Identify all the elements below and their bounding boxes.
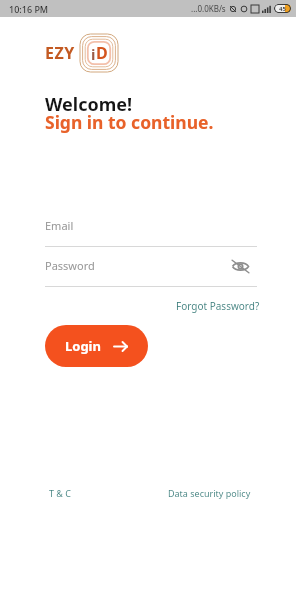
staticText: Sign in to continue. [45, 110, 214, 134]
staticText: EZY [45, 42, 75, 64]
button[interactable]: Password [45, 249, 223, 286]
staticText: T & C [49, 487, 71, 499]
staticText: 10:16 PM [9, 3, 49, 15]
staticText: 45 [279, 5, 286, 13]
staticText: Forgot Password? [176, 299, 260, 313]
staticText: Email [45, 218, 74, 233]
button[interactable]: Login [45, 325, 148, 367]
button[interactable]: Forgot Password? [174, 297, 262, 315]
button[interactable]: Email [45, 209, 257, 246]
staticText: Welcome! [45, 92, 133, 117]
button[interactable]: Data security policy [167, 486, 252, 500]
staticText: Password [45, 258, 95, 273]
button[interactable]: T & C [48, 486, 72, 500]
button[interactable]: Show password [230, 256, 251, 277]
staticText: Login [65, 337, 101, 355]
staticText: Data security policy [168, 487, 251, 499]
staticText: D [96, 42, 108, 64]
staticText: ...0.0KB/s [191, 3, 226, 14]
staticText: i [91, 44, 96, 64]
